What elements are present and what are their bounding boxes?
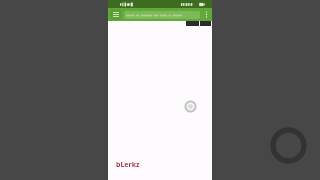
button[interactable] [124,11,200,19]
button[interactable]: Open navigation menu [110,9,121,20]
button[interactable]: More options [202,10,211,19]
staticText: bLerkz [116,160,140,170]
button[interactable]: Screen recorder control [270,127,307,164]
